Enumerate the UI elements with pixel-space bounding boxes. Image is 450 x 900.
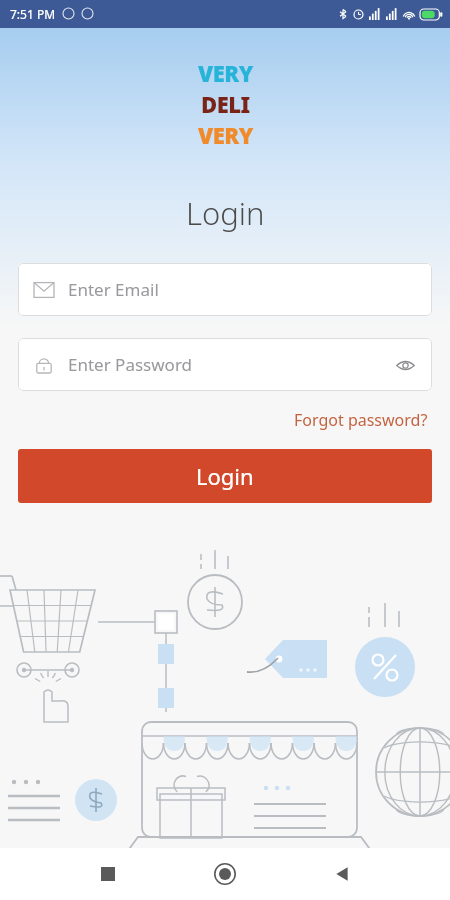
staticText: Enter Email	[68, 278, 416, 301]
button[interactable]: Enter Email	[18, 263, 432, 316]
staticText: VERY	[198, 120, 253, 150]
staticText: DELI	[201, 89, 250, 119]
staticText: Enter Password	[68, 353, 394, 376]
staticText: Login	[186, 192, 265, 234]
button[interactable]: Forgot password?	[290, 405, 432, 435]
button[interactable]: Show password	[394, 354, 416, 376]
button[interactable]: Back	[319, 851, 365, 897]
button[interactable]: Home	[202, 851, 248, 897]
button[interactable]: Login	[18, 449, 432, 503]
staticText: Login	[196, 461, 254, 491]
staticText: VERY	[198, 58, 253, 88]
staticText: Forgot password?	[294, 409, 428, 431]
button[interactable]: Recents	[85, 851, 131, 897]
button[interactable]: Enter Password	[18, 338, 432, 391]
staticText: 7:51 PM	[10, 6, 56, 22]
